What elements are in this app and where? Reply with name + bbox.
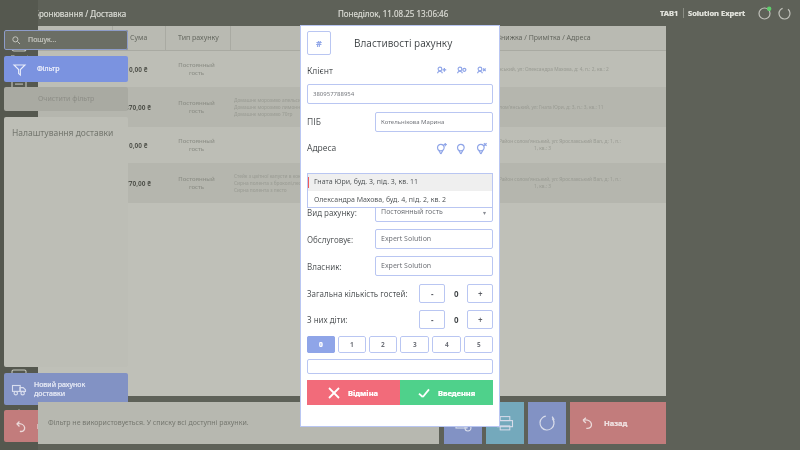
button[interactable]: Назад — [570, 402, 666, 444]
button[interactable]: Очистити фільтр — [4, 87, 128, 111]
button[interactable]: №79350 — [38, 127, 666, 163]
button[interactable]: Нефіскальні — [0, 198, 38, 239]
staticText: Очистити фільтр — [38, 94, 95, 104]
staticText: Котельнікова Марина — [381, 118, 445, 126]
button[interactable]: 4 — [432, 336, 461, 353]
staticText: Тип рахунку — [178, 33, 219, 43]
button[interactable]: 380957788954 — [307, 84, 493, 104]
staticText: Стейк з цвітної капусти в кокосовому соу… — [234, 173, 408, 180]
button[interactable]: Edit client — [453, 63, 469, 79]
staticText: + — [478, 288, 483, 299]
staticText: Адреса — [307, 142, 337, 154]
staticText: Відкриті — [11, 54, 28, 60]
button[interactable]: №79352 — [38, 87, 666, 127]
staticText: Фільтр — [37, 64, 60, 74]
button[interactable]: Налаштування доставки — [4, 117, 128, 367]
staticText: Введення — [438, 388, 476, 398]
button[interactable]: Функції — [0, 403, 38, 444]
button[interactable]: Notifications — [754, 3, 774, 23]
button[interactable]: Remove client — [473, 63, 489, 79]
button[interactable]: Add address — [433, 140, 449, 156]
staticText: Expert Solution — [381, 234, 432, 244]
staticText: Новий рахунок доставки — [34, 380, 86, 398]
button[interactable]: Відміна — [307, 380, 400, 405]
button[interactable]: Remove address — [473, 140, 489, 156]
staticText: ПІБ — [307, 116, 321, 128]
staticText: Олександра Махова, буд. 4, під. 2, кв. 2 — [314, 195, 447, 205]
button[interactable] — [307, 359, 493, 374]
button[interactable]: Refresh — [528, 402, 566, 444]
button[interactable]: Назад — [4, 410, 128, 442]
button[interactable]: Надання — [0, 321, 38, 362]
staticText: Властивості рахунку — [354, 36, 453, 50]
button[interactable]: Пошук... — [4, 30, 128, 50]
staticText: TAB1 — [660, 8, 679, 18]
button[interactable]: 3 — [400, 336, 429, 353]
button[interactable]: Фільтр — [4, 56, 128, 82]
button[interactable]: + — [467, 284, 493, 303]
button[interactable]: - — [419, 284, 445, 303]
staticText: Постоянный гость — [178, 175, 215, 191]
button[interactable]: Settings — [38, 26, 56, 50]
button[interactable]: 2 — [369, 336, 397, 353]
staticText: 1,00 — [408, 187, 418, 194]
staticText: 0 — [454, 314, 459, 325]
staticText: 1,00 — [408, 180, 418, 187]
staticText: Домашнє морозиво лимонне з тим'яном 7.. — [234, 104, 408, 111]
button[interactable]: Сума — [113, 26, 165, 50]
button[interactable]: Монітор — [0, 362, 38, 403]
button[interactable]: Receipt — [444, 402, 482, 444]
button[interactable]: Меню — [0, 280, 38, 321]
button[interactable]: Add client — [433, 63, 449, 79]
button[interactable]: Бронювання / — [0, 114, 38, 156]
staticText: + — [478, 314, 483, 325]
staticText: Обслуговує: — [307, 234, 354, 245]
button[interactable]: Постоянный гость — [375, 202, 493, 222]
staticText: - — [431, 314, 434, 325]
button[interactable]: Вміст — [231, 26, 421, 50]
button[interactable]: Expert Solution — [375, 229, 493, 249]
staticText: 1 — [350, 340, 354, 349]
button[interactable]: Введення — [400, 380, 493, 405]
staticText: 4 — [445, 340, 449, 349]
button[interactable]: №79354 — [38, 51, 666, 87]
button[interactable]: - — [419, 310, 445, 329]
staticText: Загальна кількість гостей: — [307, 288, 408, 299]
button[interactable]: Олександра Махова, буд. 4, під. 2, кв. 2 — [307, 191, 493, 208]
button[interactable]: Refresh — [774, 3, 794, 23]
button[interactable]: Гната Юри, буд. 3, під. 3, кв. 11 — [307, 173, 493, 191]
staticText: - — [431, 288, 434, 299]
button[interactable]: Number — [307, 31, 331, 55]
staticText: Назад — [604, 418, 628, 428]
button[interactable]: Новий рахунок доставки — [4, 373, 128, 405]
button[interactable]: Котельнікова Марина — [375, 112, 493, 132]
button[interactable]: Print — [486, 402, 524, 444]
staticText: 2 — [381, 340, 385, 349]
button[interactable]: Місця надання — [0, 156, 38, 198]
staticText: 1,00 — [408, 111, 418, 118]
button[interactable]: Тип рахунку — [166, 26, 230, 50]
staticText: # — [316, 37, 322, 49]
button[interactable]: Номер — [56, 26, 112, 50]
button[interactable]: 0 — [307, 336, 335, 353]
staticText: Налаштування доставки — [12, 127, 114, 139]
button[interactable]: 1 — [338, 336, 366, 353]
button[interactable]: Каса — [0, 239, 38, 280]
button[interactable]: Знижка / Примітка / Адреса — [422, 26, 666, 50]
button[interactable]: Expert Solution — [375, 256, 493, 276]
button[interactable]: 5 — [464, 336, 493, 353]
button[interactable]: Відкриті — [0, 30, 38, 72]
button[interactable]: Edit address — [453, 140, 469, 156]
staticText: З них діти: — [307, 314, 348, 325]
button[interactable]: + — [467, 310, 493, 329]
staticText: Фільтр не використовується. У списку всі… — [48, 418, 249, 428]
staticText: Домашнє морозиво апельсинове з чиаї 70.. — [234, 97, 408, 104]
button[interactable]: Закриті — [0, 72, 38, 114]
button[interactable]: №79348 — [38, 163, 666, 203]
button[interactable]: Фільтр не використовується. У списку всі… — [38, 402, 439, 444]
staticText: Домашнє морозиво 70гр — [234, 111, 408, 118]
